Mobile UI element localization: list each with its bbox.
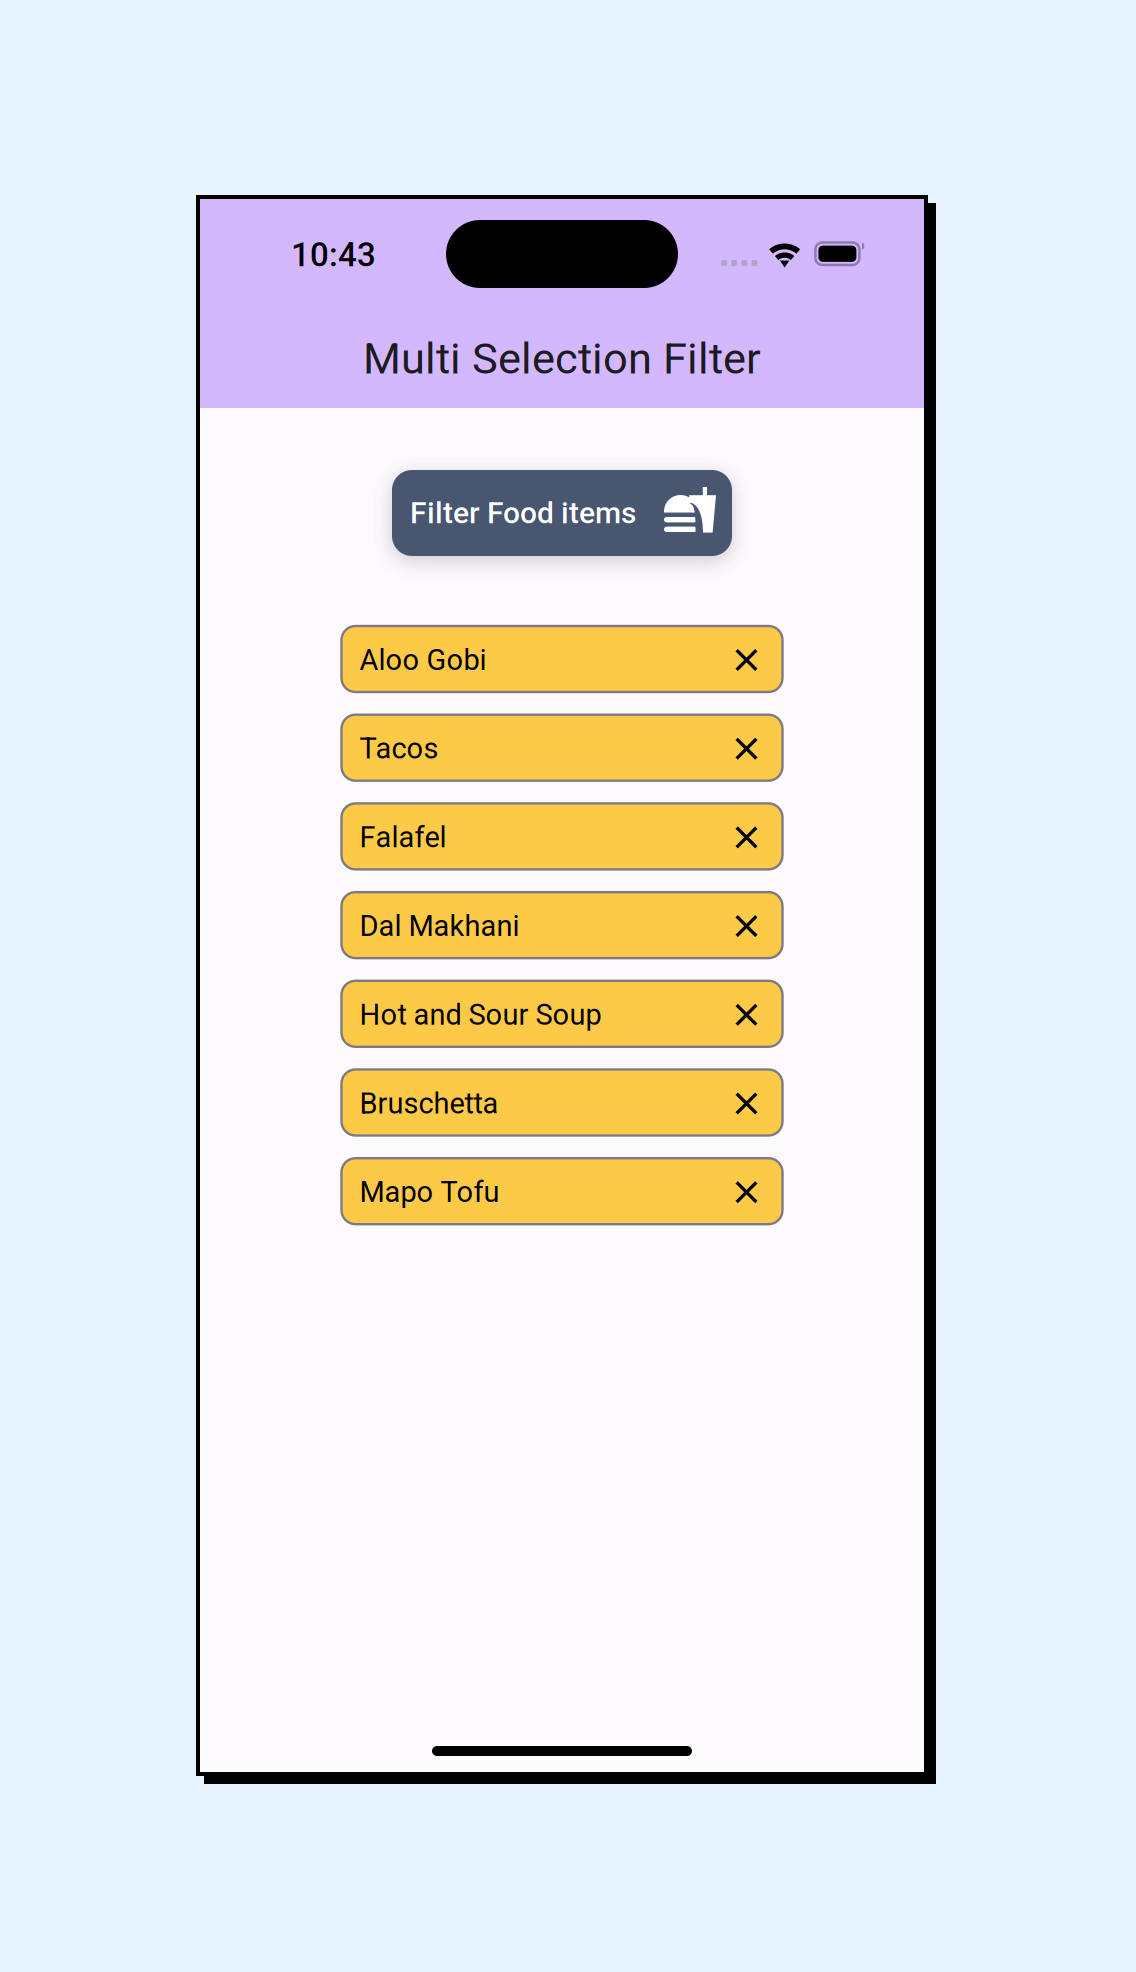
button[interactable]: Remove Mapo Tofu [735, 1181, 757, 1203]
staticText: Filter Food items [410, 495, 636, 531]
button[interactable]: Remove Aloo Gobi [735, 649, 757, 671]
button[interactable]: Tacos [341, 715, 782, 781]
staticText: Bruschetta [359, 1086, 498, 1120]
button[interactable]: Remove Bruschetta [735, 1092, 757, 1114]
button[interactable]: Hot and Sour Soup [341, 981, 782, 1047]
staticText: Hot and Sour Soup [359, 998, 601, 1032]
button[interactable]: Filter Food items [392, 470, 732, 556]
button[interactable]: Mapo Tofu [341, 1158, 782, 1224]
button[interactable]: Dal Makhani [341, 892, 782, 958]
staticText: Mapo Tofu [359, 1175, 499, 1209]
staticText: Tacos [359, 732, 438, 766]
button[interactable]: Bruschetta [341, 1069, 782, 1135]
staticText: Dal Makhani [359, 909, 519, 943]
staticText: Aloo Gobi [359, 643, 486, 677]
button[interactable]: Remove Hot and Sour Soup [735, 1004, 757, 1026]
staticText: Multi Selection Filter [363, 333, 761, 384]
button[interactable]: Aloo Gobi [341, 626, 782, 692]
button[interactable]: Remove Falafel [735, 826, 757, 848]
button[interactable]: Falafel [341, 803, 782, 869]
staticText: 10:43 [291, 236, 376, 274]
staticText: Falafel [359, 820, 446, 854]
button[interactable]: Remove Dal Makhani [735, 915, 757, 937]
button[interactable]: Remove Tacos [735, 738, 757, 760]
